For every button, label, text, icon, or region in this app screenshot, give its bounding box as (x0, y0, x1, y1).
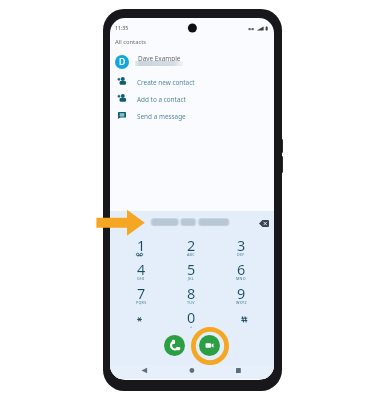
staticText: 5 (187, 260, 196, 280)
staticText: TUV (187, 300, 195, 305)
button[interactable]: Backspace (252, 213, 272, 231)
staticText: ABC (187, 252, 195, 257)
button[interactable]: 6 (216, 256, 266, 282)
staticText: Dave Example (138, 54, 181, 63)
staticText: 1 (137, 236, 146, 256)
staticText: WXYZ (236, 300, 247, 305)
button[interactable]: 9 (216, 280, 266, 306)
staticText: 2 (187, 236, 196, 256)
button[interactable]: 7 (116, 280, 166, 306)
staticText: D (119, 56, 126, 68)
staticText: 9 (237, 284, 246, 304)
button[interactable]: 4 (116, 256, 166, 282)
button[interactable]: Video call (199, 335, 220, 356)
button[interactable]: D (110, 52, 274, 71)
button[interactable]: Send a message (110, 107, 274, 124)
staticText: + (190, 324, 193, 329)
staticText: 7 (137, 284, 146, 304)
button[interactable]: 0 (166, 304, 216, 330)
button[interactable]: 8 (166, 280, 216, 306)
staticText: Create new contact (137, 78, 195, 87)
staticText: 0 (187, 308, 196, 328)
button[interactable] (216, 304, 266, 330)
staticText: 11:35 (115, 25, 129, 32)
button[interactable]: 3 (216, 232, 266, 258)
staticText: DEF (237, 252, 245, 257)
button[interactable]: 1 (116, 232, 166, 258)
staticText: Add to a contact (137, 95, 186, 104)
button[interactable]: Create new contact (110, 73, 274, 90)
staticText: GHI (137, 276, 145, 281)
staticText: 6 (237, 260, 246, 280)
staticText: 3 (237, 236, 246, 256)
staticText: All contacts (115, 38, 147, 46)
button[interactable]: Call (164, 335, 185, 356)
staticText: 8 (187, 284, 196, 304)
staticText: MNO (236, 276, 246, 281)
staticText: PQRS (136, 300, 147, 305)
button[interactable]: Add to a contact (110, 90, 274, 107)
staticText: Send a message (137, 112, 186, 121)
button[interactable]: 5 (166, 256, 216, 282)
staticText: 4 (137, 260, 146, 280)
button[interactable] (116, 304, 166, 330)
staticText: JKL (188, 276, 194, 281)
button[interactable]: 2 (166, 232, 216, 258)
